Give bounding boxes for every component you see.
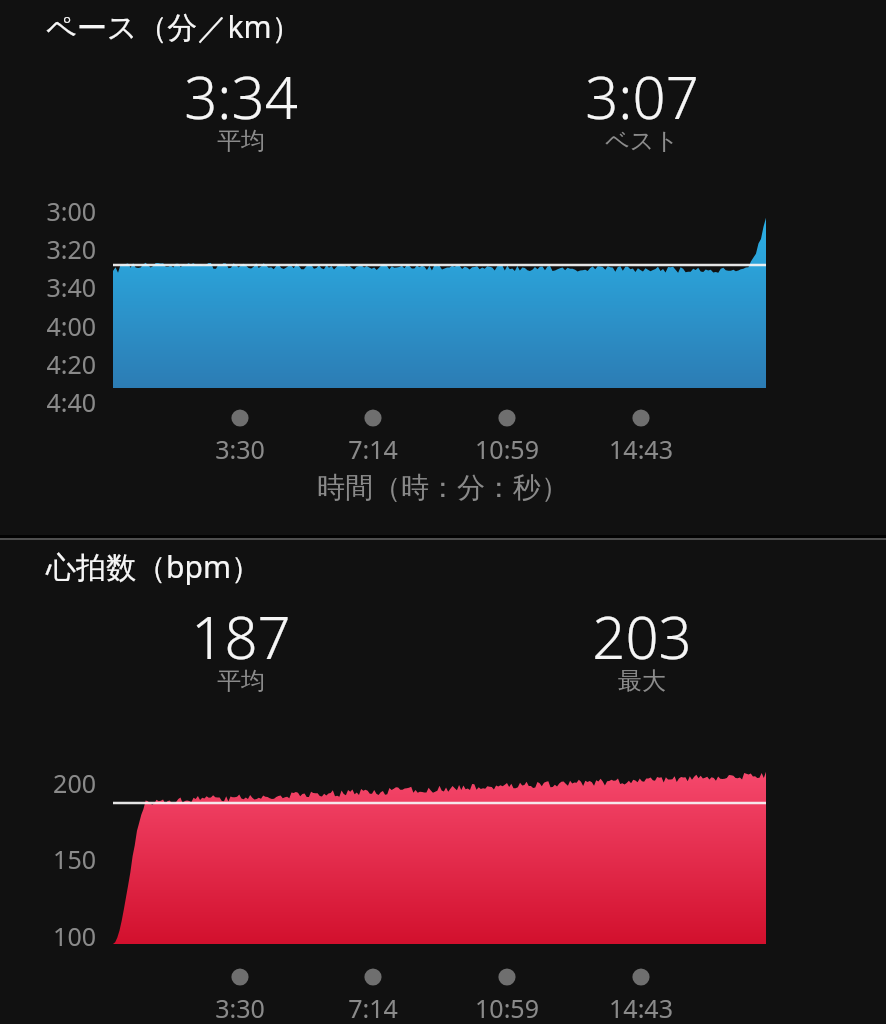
staticText: 14:43 <box>581 432 701 466</box>
staticText: 10:59 <box>447 991 567 1024</box>
staticText: 14:43 <box>581 991 701 1024</box>
staticText: 3:34 <box>0 57 482 136</box>
staticText: ベスト <box>420 126 864 156</box>
staticText: 心拍数（bpm） <box>46 546 261 587</box>
staticText: 10:59 <box>447 432 567 466</box>
staticText: 100 <box>0 919 96 953</box>
staticText: 平均 <box>0 666 482 696</box>
other: Pace chart <box>0 0 886 535</box>
staticText: 7:14 <box>313 432 433 466</box>
staticText: 150 <box>0 842 96 876</box>
staticText: 7:14 <box>313 991 433 1024</box>
staticText: 3:30 <box>180 432 300 466</box>
staticText: ペース（分／km） <box>46 6 302 47</box>
staticText: 3:20 <box>0 232 96 266</box>
staticText: 3:00 <box>0 194 96 228</box>
staticText: 平均 <box>0 126 482 156</box>
staticText: 3:40 <box>0 270 96 304</box>
staticText: 200 <box>0 766 96 800</box>
button[interactable]: Heart rate chart <box>0 540 886 1024</box>
staticText: 3:30 <box>180 991 300 1024</box>
staticText: 時間（時：分：秒） <box>0 470 886 505</box>
staticText: 187 <box>0 597 482 676</box>
button[interactable]: Pace chart <box>0 0 886 535</box>
staticText: 4:20 <box>0 347 96 381</box>
staticText: 3:07 <box>420 57 864 136</box>
staticText: 203 <box>420 597 864 676</box>
staticText: 4:40 <box>0 385 96 419</box>
other: Heart rate chart <box>0 540 886 1024</box>
staticText: 最大 <box>420 666 864 696</box>
staticText: 4:00 <box>0 309 96 343</box>
